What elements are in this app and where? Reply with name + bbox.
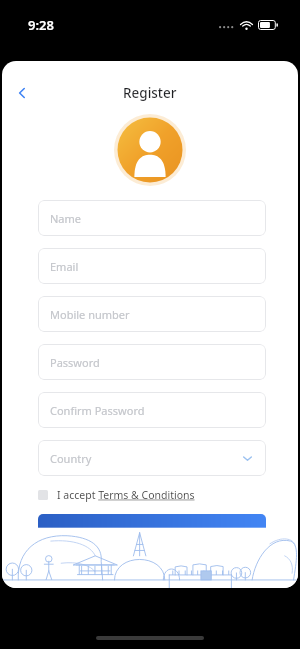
button[interactable]: Country [38,440,266,476]
staticText: Password [50,355,100,370]
staticText: Country [50,451,92,466]
staticText: Email [50,259,79,274]
staticText: 9:28 [28,16,54,34]
button[interactable]: Back [8,79,36,107]
button[interactable]: Mobile number [38,296,266,332]
button[interactable]: Email [38,248,266,284]
button[interactable]: I accept Terms & Conditions [38,485,195,505]
staticText: Register [123,84,177,102]
button[interactable]: Password [38,344,266,380]
staticText: Name [50,211,82,226]
staticText: Confirm Password [50,403,145,418]
staticText: Mobile number [50,307,130,322]
button[interactable]: Confirm Password [38,392,266,428]
button[interactable] [38,514,266,554]
staticText: I accept Terms & Conditions [57,488,195,502]
button[interactable]: Name [38,200,266,236]
